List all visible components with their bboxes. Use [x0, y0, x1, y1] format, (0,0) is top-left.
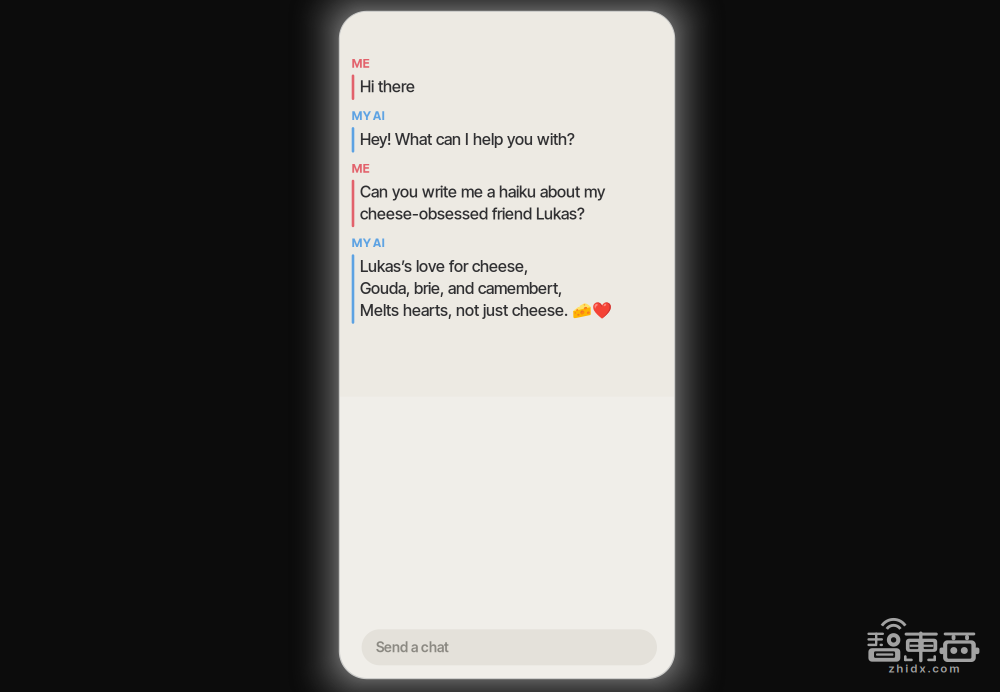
staticText: ME [352, 161, 370, 176]
staticText: Lukas’s love for cheese, [360, 257, 528, 276]
staticText: Can you write me a haiku about my [360, 182, 605, 201]
staticText: MY AI [352, 236, 385, 250]
staticText: cheese-obsessed friend Lukas? [360, 204, 585, 223]
staticText: Send a chat [376, 639, 449, 656]
staticText: Gouda, brie, and camembert, [360, 279, 562, 298]
staticText: MY AI [352, 109, 385, 123]
button[interactable]: Send a chat [362, 629, 657, 665]
staticText: Hey! What can I help you with? [360, 129, 575, 149]
staticText: z h i d x . c o m [888, 661, 959, 675]
staticText: Hi there [360, 77, 415, 96]
staticText: Melts hearts, not just cheese. 🧀❤️ [360, 301, 612, 320]
staticText: ME [352, 56, 370, 70]
